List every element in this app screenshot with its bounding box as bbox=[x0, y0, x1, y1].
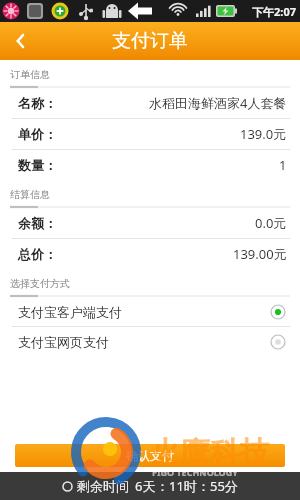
button[interactable]: 支付宝网页支付 bbox=[0, 327, 300, 356]
button[interactable]: 数量： bbox=[0, 150, 300, 180]
staticText: 55分 bbox=[210, 477, 238, 495]
button[interactable]: 支付宝客户端支付 bbox=[0, 297, 300, 326]
button[interactable]: Back bbox=[0, 22, 44, 60]
staticText: 支付宝客户端支付 bbox=[18, 304, 122, 320]
button[interactable]: 单价： bbox=[0, 119, 300, 149]
staticText: 确认支付 bbox=[126, 448, 174, 463]
staticText: 余额： bbox=[18, 215, 57, 231]
staticText: 名称： bbox=[18, 95, 57, 111]
staticText: 1 bbox=[279, 156, 287, 174]
button[interactable]: 名称： bbox=[0, 88, 300, 118]
staticText: 订单信息 bbox=[10, 68, 50, 81]
staticText: 0.0元 bbox=[255, 214, 287, 232]
staticText: 支付宝网页支付 bbox=[18, 334, 109, 350]
staticText: 结算信息 bbox=[10, 188, 50, 201]
staticText: 单价： bbox=[18, 126, 57, 142]
staticText: 139.0元 bbox=[240, 125, 287, 143]
staticText: 数量： bbox=[18, 157, 57, 173]
staticText: ： bbox=[156, 478, 169, 494]
staticText: 11时 bbox=[169, 477, 197, 495]
button[interactable]: 余额： bbox=[0, 208, 300, 238]
staticText: 支付订单 bbox=[112, 29, 188, 53]
staticText: 选择支付方式 bbox=[10, 277, 70, 290]
staticText: FIGO TECHNOLOGY bbox=[152, 466, 238, 478]
staticText: 火鹰科技 bbox=[150, 434, 270, 472]
staticText: 剩余时间 bbox=[77, 478, 129, 494]
staticText: 总价： bbox=[18, 246, 57, 262]
staticText: 下午2:07 bbox=[252, 4, 296, 19]
button[interactable]: 确认支付 bbox=[15, 444, 285, 467]
staticText: 水稻田海鲜酒家4人套餐 bbox=[149, 94, 287, 112]
staticText: 139.00元 bbox=[233, 245, 287, 263]
staticText: 6天 bbox=[135, 477, 156, 495]
staticText: ： bbox=[197, 478, 210, 494]
button[interactable]: 总价： bbox=[0, 239, 300, 269]
